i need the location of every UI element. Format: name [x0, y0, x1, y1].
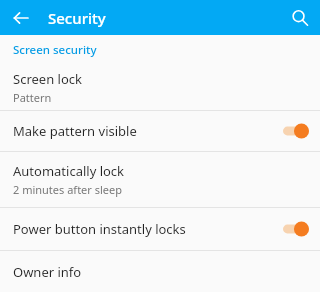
staticText: 2 minutes after sleep	[13, 182, 122, 197]
staticText: Pattern	[13, 90, 52, 105]
staticText: Screen security	[13, 42, 97, 58]
button[interactable]: Screen lock	[0, 64, 320, 110]
staticText: Make pattern visible	[13, 122, 137, 140]
staticText: Security	[48, 8, 288, 28]
staticText: Automatically lock	[13, 162, 125, 180]
staticText: Power button instantly locks	[13, 220, 186, 238]
staticText: Owner info	[13, 263, 82, 281]
button[interactable]: Owner info	[0, 251, 320, 292]
button[interactable]: Automatically lock	[0, 152, 320, 207]
button[interactable]: Back	[10, 7, 32, 29]
button[interactable]: Make pattern visible	[0, 111, 320, 151]
button[interactable]: Power button instantly locks	[0, 208, 320, 250]
button[interactable]: Search	[288, 6, 312, 30]
staticText: Screen lock	[13, 70, 82, 88]
